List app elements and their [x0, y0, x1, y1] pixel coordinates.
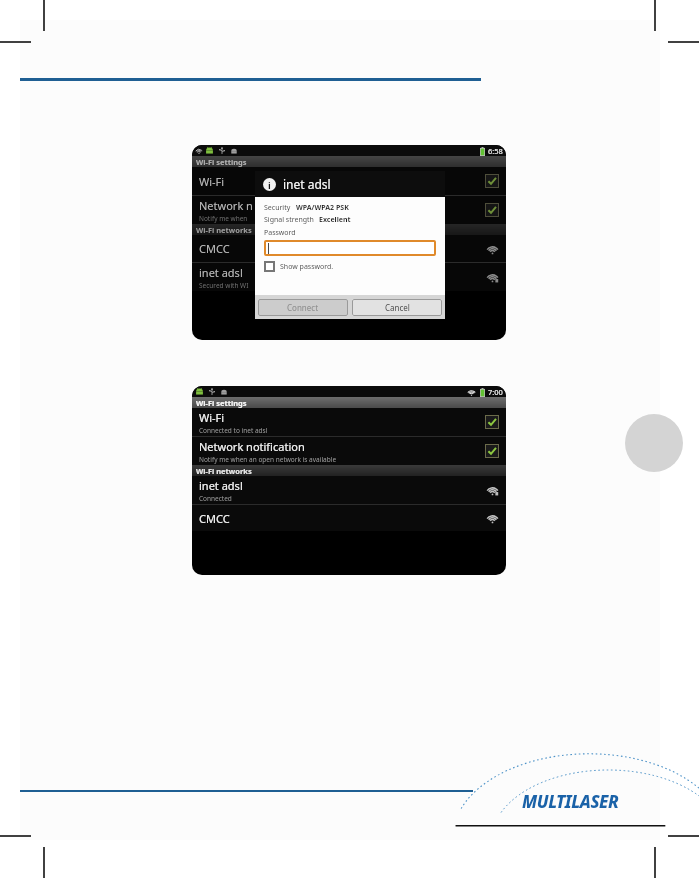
other: Wi-Fi signal — [485, 511, 499, 525]
staticText: Secured with WI — [199, 281, 249, 290]
staticText: inet adsl — [199, 265, 243, 280]
button[interactable]: Network n — [192, 196, 506, 224]
staticText: Connected — [199, 494, 232, 503]
staticText: i — [268, 179, 271, 191]
staticText: Security — [264, 203, 291, 213]
staticText: Cancel — [385, 302, 410, 313]
staticText: Show password. — [280, 262, 334, 272]
button[interactable]: inet adsl — [192, 476, 506, 504]
other: Enabled — [485, 203, 499, 217]
staticText: Network notification — [199, 439, 305, 454]
other: Secured Wi-Fi signal — [485, 270, 499, 284]
other: Enabled — [485, 444, 499, 458]
staticText: 7:00 — [488, 387, 503, 397]
button[interactable]: Password field — [264, 240, 436, 256]
staticText: Wi-Fi — [199, 410, 225, 425]
other: Enabled — [485, 415, 499, 429]
button[interactable]: Connect — [258, 299, 348, 316]
button[interactable]: Cancel — [352, 299, 442, 316]
staticText: Wi-Fi networks — [196, 225, 252, 235]
staticText: Excellent — [319, 215, 351, 225]
staticText: Network n — [199, 198, 253, 213]
staticText: Wi-Fi settings — [196, 398, 247, 408]
staticText: Wi-Fi settings — [196, 157, 247, 167]
staticText: MULTILASER — [522, 790, 619, 813]
staticText: WPA/WPA2 PSK — [296, 203, 349, 213]
button[interactable]: CMCC — [192, 235, 506, 262]
staticText: Signal strength — [264, 215, 314, 225]
staticText: Connected to inet adsl — [199, 426, 268, 435]
staticText: inet adsl — [283, 176, 331, 192]
button[interactable]: Wi-Fi — [192, 408, 506, 436]
button[interactable]: CMCC — [192, 505, 506, 531]
staticText: inet adsl — [199, 478, 243, 493]
staticText: 6:58 — [488, 146, 503, 156]
other: Wi-Fi signal — [485, 242, 499, 256]
button[interactable]: Show password. — [264, 261, 334, 272]
staticText: CMCC — [199, 241, 230, 256]
other: Secured Wi-Fi signal — [485, 483, 499, 497]
staticText: Notify me when — [199, 214, 248, 223]
staticText: CMCC — [199, 511, 230, 526]
button[interactable]: Wi-Fi — [192, 167, 506, 195]
staticText: Wi-Fi — [199, 174, 225, 189]
other: Enabled — [485, 174, 499, 188]
staticText: Wi-Fi networks — [196, 466, 252, 476]
button[interactable]: inet adsl — [192, 263, 506, 291]
staticText: Connect — [287, 302, 319, 313]
staticText: Password — [264, 228, 296, 238]
staticText: Notify me when an open network is availa… — [199, 455, 337, 464]
button[interactable]: Network notification — [192, 437, 506, 465]
